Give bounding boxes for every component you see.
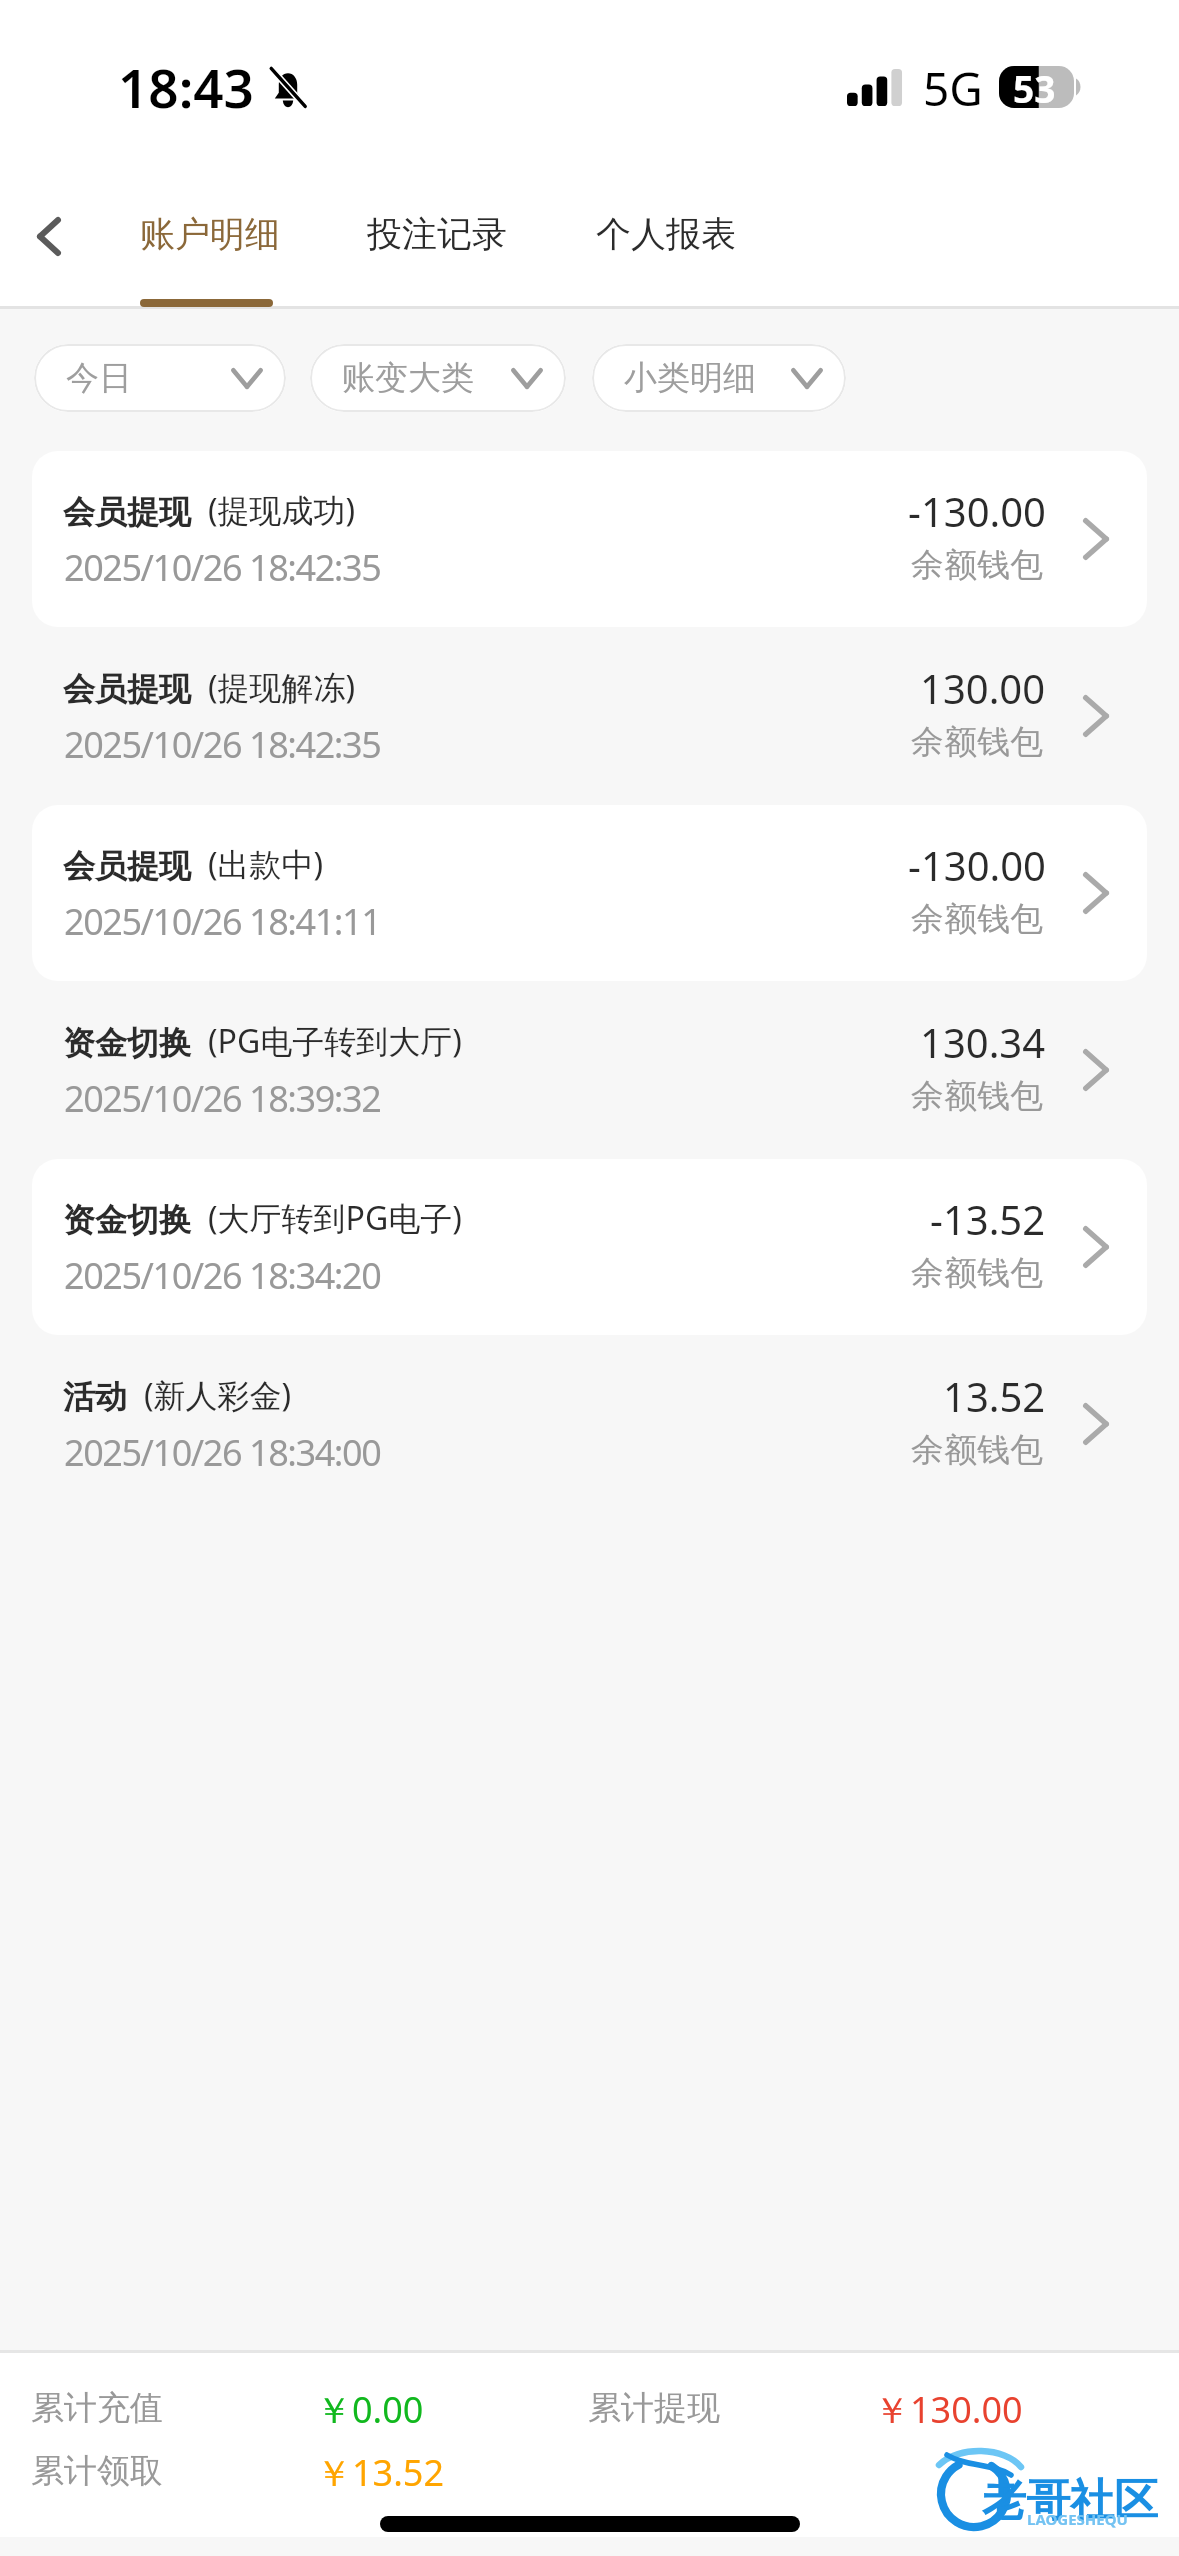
button[interactable]: 个人报表 (572, 178, 754, 307)
staticText: 130.00 (920, 661, 1046, 715)
staticText: 余额钱包 (911, 898, 1043, 940)
staticText: 2025/10/26 18:39:32 (64, 1074, 381, 1123)
staticText: 130.34 (920, 1015, 1046, 1069)
staticText: ￥0.00 (316, 2385, 424, 2434)
staticText: 2025/10/26 18:42:35 (64, 720, 381, 769)
staticText: 小类明细 (624, 357, 756, 399)
staticText: 2025/10/26 18:41:11 (64, 897, 381, 946)
staticText: 2025/10/26 18:34:00 (64, 1428, 381, 1477)
staticText: 13.52 (943, 1369, 1046, 1423)
staticText: 个人报表 (596, 212, 736, 256)
button[interactable]: 资金切换 (32, 982, 1147, 1158)
staticText: 5G (923, 57, 983, 120)
staticText: -13.52 (930, 1192, 1046, 1246)
button[interactable]: 活动 (32, 1336, 1147, 1512)
staticText: (PG电子转到大厅) (208, 1019, 462, 1063)
staticText: 2025/10/26 18:42:35 (64, 543, 381, 592)
staticText: (新人彩金) (144, 1373, 292, 1417)
button[interactable]: 小类明细 (592, 344, 846, 412)
staticText: 会员提现 (63, 846, 191, 886)
staticText: -130.00 (908, 838, 1046, 892)
staticText: 资金切换 (63, 1023, 191, 1063)
button[interactable]: Back (2, 190, 96, 282)
staticText: 资金切换 (63, 1200, 191, 1240)
staticText: (提现解冻) (208, 665, 356, 709)
staticText: ￥13.52 (316, 2448, 445, 2497)
staticText: LAOGESHEQU (1027, 2509, 1128, 2529)
staticText: 老哥社区 (982, 2473, 1158, 2528)
staticText: 余额钱包 (911, 721, 1043, 763)
staticText: 53 (1013, 63, 1056, 105)
staticText: ￥130.00 (874, 2385, 1023, 2434)
staticText: 投注记录 (367, 212, 507, 256)
staticText: 会员提现 (63, 492, 191, 532)
button[interactable]: 资金切换 (32, 1159, 1147, 1335)
staticText: 18:43 (118, 51, 254, 123)
staticText: 累计领取 (31, 2450, 163, 2492)
button[interactable]: 会员提现 (32, 628, 1147, 804)
staticText: 账户明细 (140, 212, 280, 256)
staticText: 活动 (63, 1377, 127, 1417)
button[interactable]: 账变大类 (310, 344, 566, 412)
button[interactable]: 投注记录 (343, 178, 525, 307)
staticText: 今日 (66, 357, 132, 399)
staticText: 余额钱包 (911, 1429, 1043, 1471)
staticText: 2025/10/26 18:34:20 (64, 1251, 381, 1300)
button[interactable]: 今日 (34, 344, 286, 412)
staticText: 余额钱包 (911, 544, 1043, 586)
staticText: (出款中) (208, 842, 324, 886)
staticText: 余额钱包 (911, 1252, 1043, 1294)
staticText: -130.00 (908, 484, 1046, 538)
staticText: (提现成功) (208, 488, 356, 532)
staticText: 余额钱包 (911, 1075, 1043, 1117)
button[interactable]: 会员提现 (32, 451, 1147, 627)
staticText: 累计提现 (588, 2387, 720, 2429)
button[interactable]: 会员提现 (32, 805, 1147, 981)
staticText: 会员提现 (63, 669, 191, 709)
button[interactable]: 账户明细 (116, 178, 298, 307)
staticText: (大厅转到PG电子) (208, 1196, 462, 1240)
staticText: 账变大类 (342, 357, 474, 399)
staticText: 累计充值 (31, 2387, 163, 2429)
